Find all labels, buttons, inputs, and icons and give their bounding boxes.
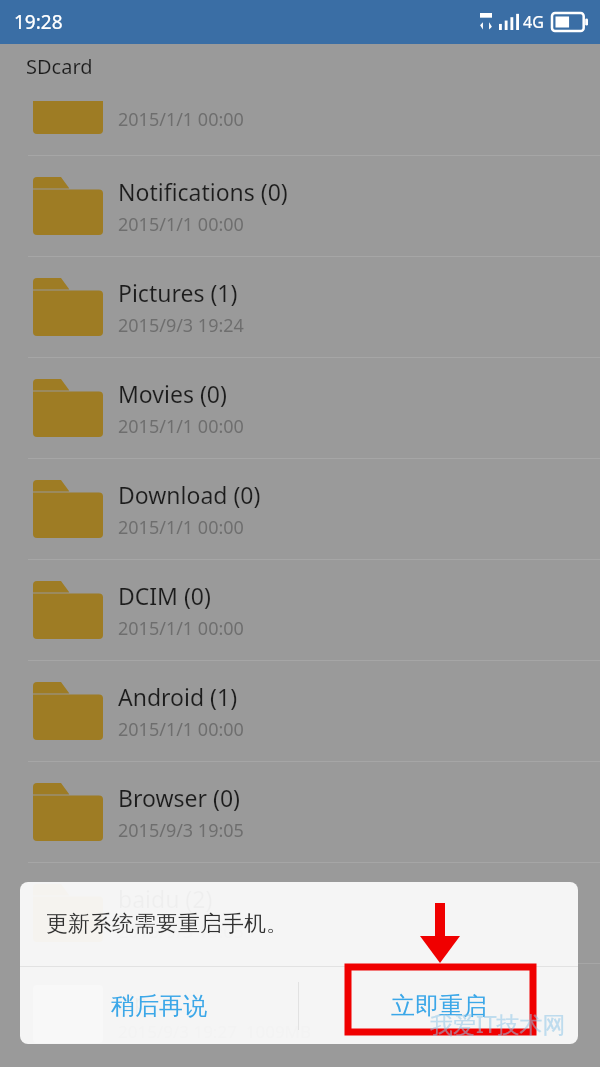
button[interactable]: 立即重启: [299, 967, 578, 1044]
button[interactable]: 稍后再说: [20, 967, 298, 1044]
staticText: 2015/1/1 00:00: [118, 212, 244, 237]
button[interactable]: Notifications (0): [0, 156, 600, 256]
staticText: 稍后再说: [111, 991, 207, 1021]
button[interactable]: Download (0): [0, 459, 600, 559]
staticText: Browser (0): [118, 782, 240, 813]
staticText: 2015/1/1 00:00: [118, 616, 244, 641]
staticText: 2015/9/3 19:24: [118, 313, 244, 338]
staticText: 2015/9/3 19:05: [118, 818, 244, 843]
button[interactable]: DCIM (0): [0, 560, 600, 660]
staticText: zip: [118, 986, 148, 1016]
staticText: 4G: [523, 11, 544, 33]
staticText: 2015/1/1 00:00: [118, 414, 244, 439]
staticText: 立即重启: [391, 991, 487, 1021]
staticText: 更新系统需要重启手机。: [46, 910, 288, 938]
staticText: 2015/1/1 00:00: [118, 107, 244, 132]
button[interactable]: Movies (0): [0, 358, 600, 458]
button[interactable]: zip: [0, 964, 600, 1064]
staticText: 2015/9/3 19:05: [118, 919, 244, 944]
staticText: 2015/1/1 00:00: [118, 515, 244, 540]
button[interactable]: baidu (2): [0, 863, 600, 963]
staticText: Android (1): [118, 681, 238, 712]
staticText: baidu (2): [118, 883, 213, 914]
button[interactable]: Browser (0): [0, 762, 600, 862]
staticText: 我爱IT技术网: [430, 1008, 566, 1039]
staticText: SDcard: [26, 53, 93, 80]
staticText: Movies (0): [118, 378, 227, 409]
staticText: 19:28: [14, 9, 63, 35]
staticText: Download (0): [118, 479, 261, 510]
button[interactable]: Pictures (1): [0, 257, 600, 357]
button[interactable]: 2015/1/1 00:00: [0, 88, 600, 155]
staticText: Notifications (0): [118, 176, 288, 207]
other: Mobile data: [479, 13, 493, 31]
staticText: 2015/1/1 00:00: [118, 717, 244, 742]
staticText: DCIM (0): [118, 580, 211, 611]
staticText: Pictures (1): [118, 277, 238, 308]
button[interactable]: Android (1): [0, 661, 600, 761]
